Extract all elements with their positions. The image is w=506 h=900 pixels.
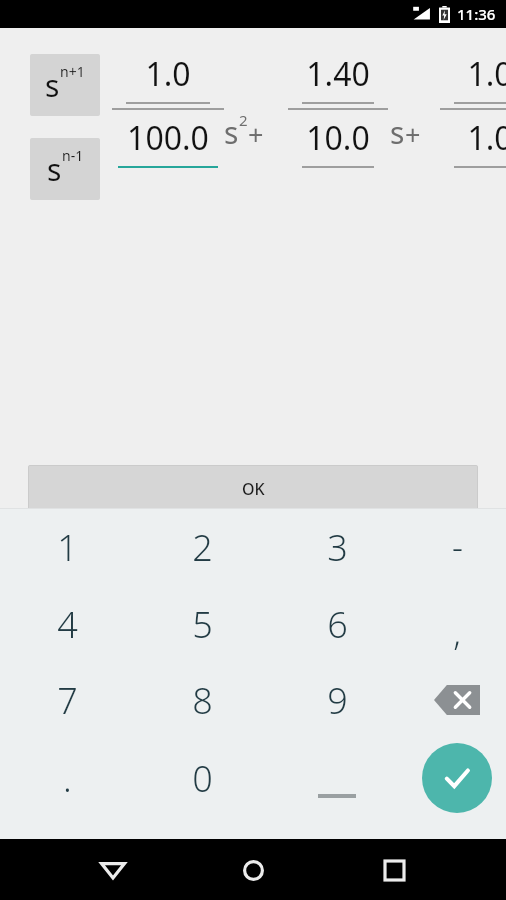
button[interactable]: 8 bbox=[150, 664, 254, 736]
staticText: n-1 bbox=[62, 146, 84, 165]
button[interactable]: s bbox=[30, 138, 100, 200]
staticText: 1.0 bbox=[112, 52, 224, 96]
button[interactable]: 1.0 bbox=[112, 52, 224, 168]
staticText: 1.0 bbox=[440, 116, 506, 160]
button[interactable]: Recent apps bbox=[366, 842, 422, 898]
staticText: 0 bbox=[192, 754, 213, 803]
staticText: s bbox=[390, 112, 405, 153]
button[interactable]: 2 bbox=[150, 511, 254, 583]
staticText: 1 bbox=[57, 523, 78, 572]
staticText: 4 bbox=[57, 600, 78, 649]
button[interactable]: 7 bbox=[15, 664, 119, 736]
button[interactable]: Back bbox=[85, 842, 141, 898]
staticText: 3 bbox=[327, 523, 348, 572]
staticText: s bbox=[224, 112, 239, 153]
staticText: 1.0 bbox=[440, 52, 506, 96]
staticText: + bbox=[405, 116, 421, 153]
button[interactable]: 9 bbox=[285, 664, 389, 736]
button[interactable]: OK bbox=[28, 465, 478, 513]
button[interactable]: 1.40 bbox=[288, 52, 388, 168]
staticText: 9 bbox=[327, 676, 348, 725]
staticText: 100.0 bbox=[112, 116, 224, 160]
button[interactable]: Space bbox=[285, 742, 389, 814]
button[interactable]: 3 bbox=[285, 511, 389, 583]
staticText: 7 bbox=[57, 676, 78, 725]
staticText: - bbox=[452, 524, 463, 570]
staticText: . bbox=[63, 754, 72, 803]
staticText: s bbox=[45, 65, 60, 106]
button[interactable]: 0 bbox=[150, 742, 254, 814]
button[interactable]: 4 bbox=[15, 588, 119, 660]
staticText: 11:36 bbox=[457, 4, 496, 24]
staticText: OK bbox=[242, 478, 265, 500]
staticText: , bbox=[453, 609, 461, 655]
staticText: 2 bbox=[192, 523, 213, 572]
staticText: 5 bbox=[192, 600, 213, 649]
staticText: 2 bbox=[239, 110, 248, 130]
button[interactable]: . bbox=[15, 742, 119, 814]
button[interactable]: 1 bbox=[15, 511, 119, 583]
button[interactable]: , bbox=[405, 596, 506, 668]
staticText: 8 bbox=[192, 676, 213, 725]
staticText: s bbox=[47, 149, 62, 190]
button[interactable]: Backspace bbox=[409, 666, 505, 734]
button[interactable]: 5 bbox=[150, 588, 254, 660]
staticText: + bbox=[248, 116, 264, 153]
button[interactable]: Confirm bbox=[422, 743, 492, 813]
staticText: 10.0 bbox=[288, 116, 388, 160]
button[interactable]: s bbox=[30, 54, 100, 116]
staticText: n+1 bbox=[60, 62, 85, 81]
staticText: 1.40 bbox=[288, 52, 388, 96]
button[interactable]: Home bbox=[225, 842, 281, 898]
button[interactable]: 6 bbox=[285, 588, 389, 660]
button[interactable]: 1.0 bbox=[440, 52, 506, 168]
button[interactable]: - bbox=[405, 511, 506, 583]
staticText: 6 bbox=[327, 600, 348, 649]
